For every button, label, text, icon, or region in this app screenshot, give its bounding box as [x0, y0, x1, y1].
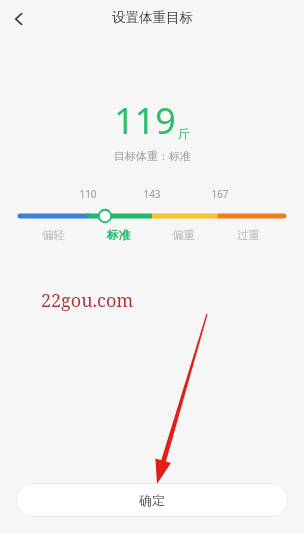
staticText: 偏重 — [172, 228, 195, 242]
staticText: 143 — [143, 187, 161, 201]
button[interactable]: Back — [4, 4, 34, 34]
button[interactable]: 偏轻 — [29, 228, 77, 242]
staticText: 22gou.com — [41, 288, 134, 313]
button[interactable]: Weight range slider — [0, 203, 304, 229]
staticText: 110 — [79, 187, 97, 201]
button[interactable]: 偏重 — [159, 228, 207, 242]
staticText: 119 — [114, 96, 176, 145]
staticText: 标准 — [107, 228, 130, 242]
staticText: 斤 — [178, 126, 190, 141]
staticText: 167 — [211, 187, 229, 201]
button[interactable]: 确定 — [16, 483, 288, 517]
staticText: 目标体重：标准 — [114, 149, 191, 163]
staticText: 设置体重目标 — [112, 9, 193, 26]
button[interactable]: 过重 — [224, 228, 272, 242]
button[interactable]: 标准 — [94, 228, 142, 242]
staticText: 过重 — [237, 228, 260, 242]
staticText: 确定 — [139, 492, 165, 508]
staticText: 偏轻 — [42, 228, 65, 242]
